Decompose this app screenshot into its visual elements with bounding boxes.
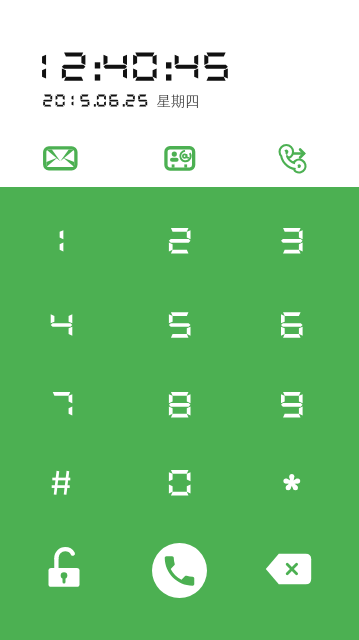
button[interactable]: Backspace <box>256 545 332 593</box>
button[interactable]: Call <box>152 543 207 598</box>
staticText: 星期四 <box>157 93 199 111</box>
button[interactable]: Call log <box>240 138 359 180</box>
button[interactable]: Messages <box>0 138 120 180</box>
button[interactable]: Unlock <box>24 545 104 593</box>
button[interactable]: Contacts <box>120 138 240 180</box>
